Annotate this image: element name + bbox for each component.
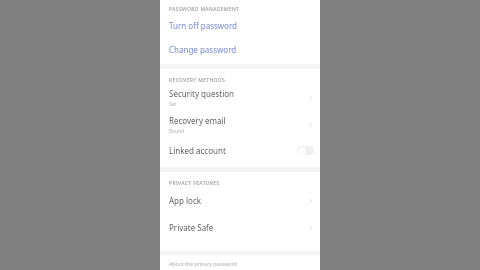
button[interactable]: Change password — [160, 38, 320, 61]
staticText: PRIVACY FEATURES — [169, 180, 220, 187]
staticText: Bound — [169, 128, 184, 135]
button[interactable]: Security question — [160, 84, 320, 111]
button[interactable]: App lock — [160, 187, 320, 214]
staticText: Set — [169, 101, 177, 108]
button[interactable]: Private Safe — [160, 214, 320, 241]
staticText: RECOVERY METHODS — [169, 77, 225, 84]
staticText: PASSWORD MANAGEMENT — [169, 6, 240, 13]
staticText: Linked account — [169, 145, 226, 156]
button[interactable]: About the privacy password — [160, 255, 320, 270]
staticText: Private Safe — [169, 222, 214, 233]
button[interactable]: Recovery email — [160, 111, 320, 138]
staticText: Security question — [169, 88, 235, 99]
button[interactable]: Linked account — [160, 138, 320, 162]
staticText: Change password — [169, 44, 237, 55]
staticText: Recovery email — [169, 115, 226, 126]
staticText: About the privacy password — [169, 260, 237, 267]
button[interactable]: Turn off password — [160, 13, 320, 38]
staticText: App lock — [169, 195, 202, 206]
staticText: Turn off password — [169, 20, 238, 31]
